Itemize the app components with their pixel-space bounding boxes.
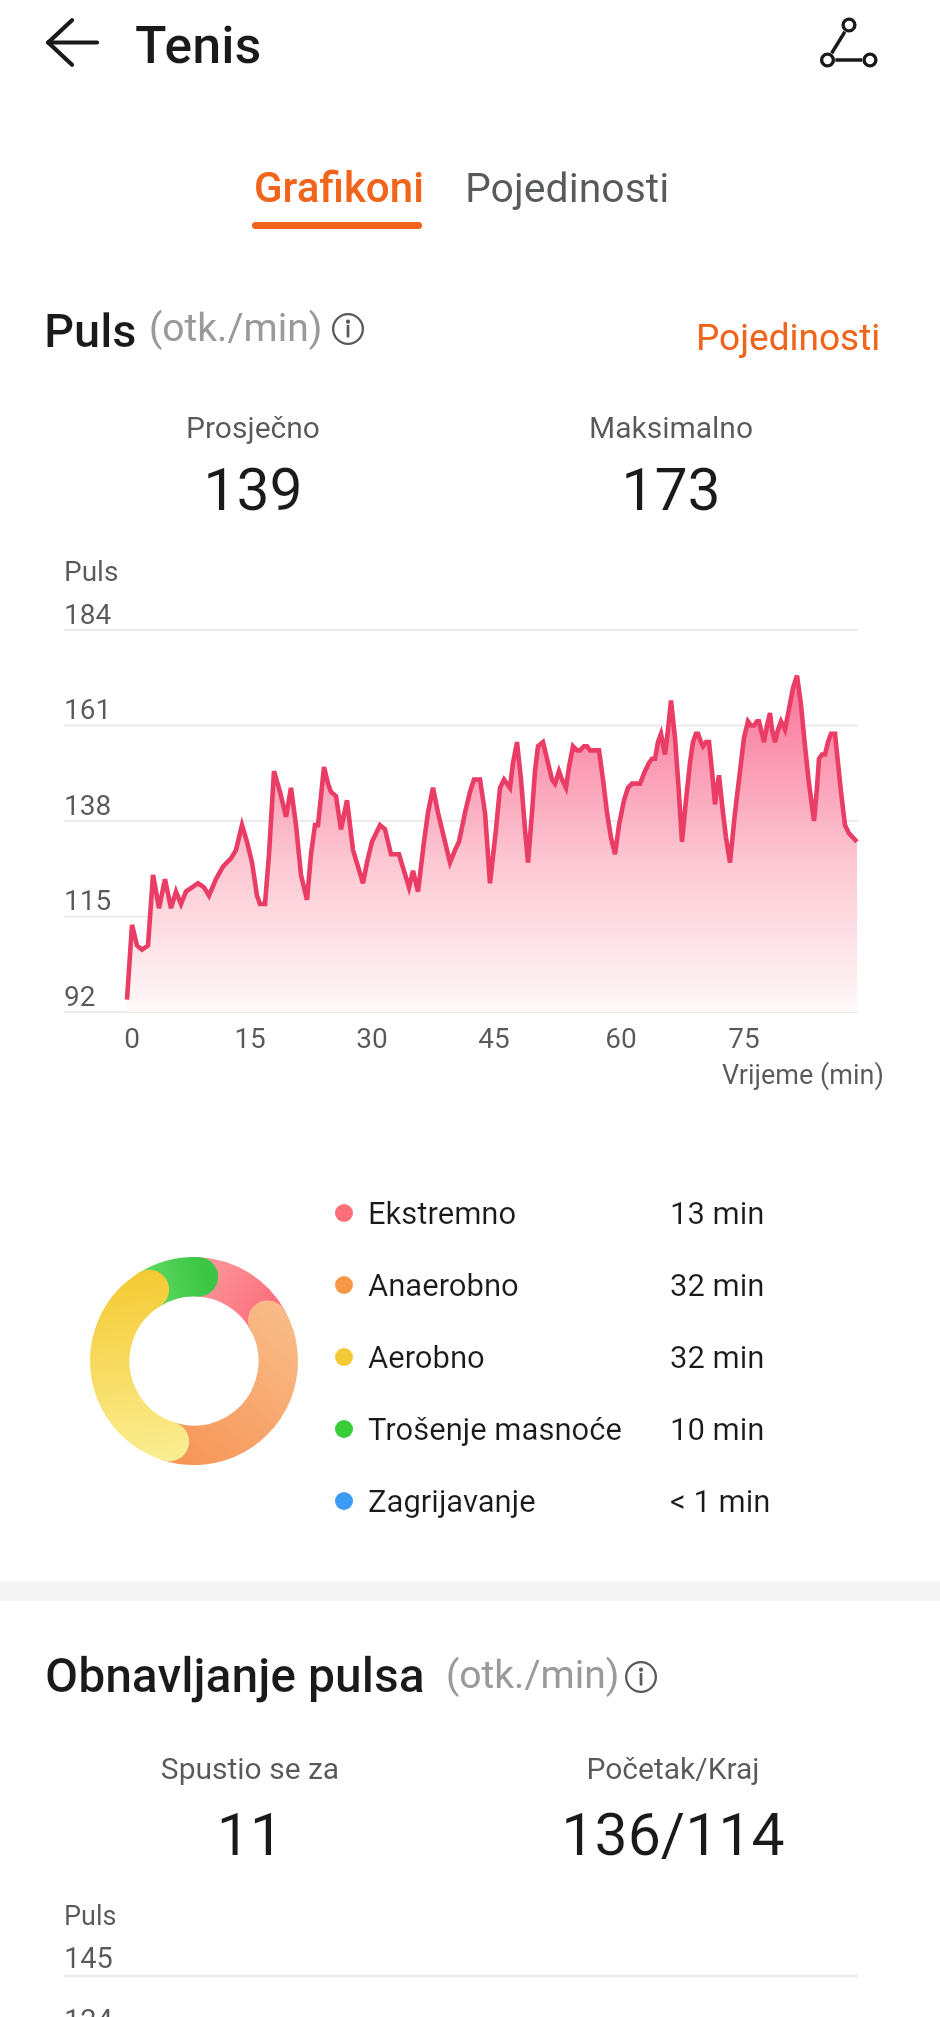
staticText: Grafikoni xyxy=(254,163,424,212)
button[interactable]: Ekstremno xyxy=(330,1178,790,1248)
button[interactable]: Trošenje masnoće xyxy=(330,1394,790,1464)
staticText: Prosječno xyxy=(53,410,453,445)
button[interactable]: Anaerobno xyxy=(330,1250,790,1320)
staticText: 115 xyxy=(64,884,112,917)
staticText: 75 xyxy=(694,1022,794,1055)
button[interactable]: Share xyxy=(804,4,906,92)
staticText: 32 min xyxy=(670,1339,765,1375)
staticText: 161 xyxy=(64,693,112,726)
staticText: Anaerobno xyxy=(368,1267,519,1303)
staticText: Puls xyxy=(64,555,119,588)
staticText: Početak/Kraj xyxy=(473,1751,873,1786)
button[interactable]: Pojedinosti xyxy=(458,148,680,220)
staticText: Ekstremno xyxy=(368,1195,517,1231)
button[interactable]: Aerobno xyxy=(330,1322,790,1392)
staticText: 15 xyxy=(200,1022,300,1055)
staticText: 32 min xyxy=(670,1267,765,1303)
staticText: Spustio se za xyxy=(50,1751,450,1786)
staticText: (otk./min) xyxy=(149,305,323,351)
staticText: 124 xyxy=(64,2003,113,2017)
staticText: 45 xyxy=(444,1022,544,1055)
staticText: 138 xyxy=(64,789,112,822)
staticText: < 1 min xyxy=(670,1483,771,1519)
staticText: (otk./min) xyxy=(446,1652,620,1698)
staticText: Tenis xyxy=(135,15,262,76)
staticText: Trošenje masnoće xyxy=(368,1411,622,1447)
staticText: 30 xyxy=(322,1022,422,1055)
staticText: Puls xyxy=(64,1900,117,1932)
staticText: 139 xyxy=(53,455,453,524)
staticText: 184 xyxy=(64,598,112,631)
staticText: Vrijeme (min) xyxy=(722,1059,884,1091)
staticText: 60 xyxy=(571,1022,671,1055)
staticText: Aerobno xyxy=(368,1339,485,1375)
staticText: Obnavljanje pulsa xyxy=(45,1647,425,1703)
staticText: 145 xyxy=(64,1941,113,1975)
staticText: 11 xyxy=(50,1800,450,1869)
staticText: 0 xyxy=(82,1022,182,1055)
staticText: 173 xyxy=(471,455,871,524)
staticText: Zagrijavanje xyxy=(368,1483,536,1519)
button[interactable]: Zagrijavanje xyxy=(330,1466,790,1536)
staticText: 136/114 xyxy=(473,1800,873,1869)
staticText: Maksimalno xyxy=(471,410,871,445)
staticText: Pojedinosti xyxy=(696,316,881,359)
staticText: 10 min xyxy=(670,1411,765,1447)
staticText: 13 min xyxy=(670,1195,765,1231)
staticText: Pojedinosti xyxy=(465,164,670,212)
staticText: 92 xyxy=(64,980,96,1013)
button[interactable]: Grafikoni xyxy=(236,148,442,244)
staticText: Puls xyxy=(44,303,137,358)
button[interactable]: Back xyxy=(14,0,134,88)
button[interactable]: Pojedinosti xyxy=(688,306,890,360)
